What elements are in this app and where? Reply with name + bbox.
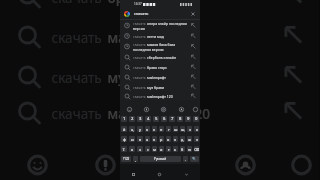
button[interactable]: ч: [137, 146, 143, 152]
button[interactable]: 🔍: [190, 156, 199, 162]
button[interactable]: More: [275, 139, 320, 180]
button[interactable]: Settings: [157, 103, 170, 116]
button[interactable]: ю: [187, 146, 192, 152]
other: Insert suggestion: [187, 31, 200, 41]
button[interactable]: Voice input: [79, 139, 131, 180]
staticText: 2: [131, 116, 134, 122]
button[interactable]: Stickers: [175, 103, 188, 116]
other: Insert suggestion: [267, 55, 319, 95]
button[interactable]: ф: [121, 136, 127, 142]
button[interactable]: 1: [121, 116, 127, 122]
button[interactable]: р: [159, 136, 164, 142]
button[interactable]: щ: [180, 126, 185, 132]
button[interactable]: м: [152, 146, 157, 152]
button[interactable]: 6: [161, 116, 167, 122]
button[interactable]: ы: [129, 136, 135, 142]
staticText: р: [160, 137, 163, 142]
staticText: й: [123, 127, 126, 132]
button[interactable]: и: [159, 146, 164, 152]
button[interactable]: н: [159, 126, 164, 132]
button[interactable]: б: [180, 146, 185, 152]
button[interactable]: Emoji: [123, 103, 136, 116]
button[interactable]: Home: [146, 164, 173, 180]
button[interactable]: скачать: [120, 62, 200, 72]
button[interactable]: скачать: [0, 55, 319, 95]
button[interactable]: скачать: [120, 41, 200, 52]
staticText: скачать: [133, 65, 147, 70]
button[interactable]: скачать: [120, 52, 200, 62]
button[interactable]: г: [166, 126, 171, 132]
button[interactable]: ⇧: [121, 146, 127, 152]
button[interactable]: скачать: [120, 92, 200, 100]
button[interactable]: я: [129, 146, 135, 152]
button[interactable]: 0: [193, 116, 199, 122]
button[interactable]: Clear: [191, 12, 195, 16]
button[interactable]: Voice input: [140, 103, 153, 116]
other: Insert suggestion: [187, 52, 200, 62]
button[interactable]: скачать: [0, 0, 319, 15]
staticText: муз брави: [147, 85, 165, 90]
button[interactable]: в: [137, 136, 143, 142]
button[interactable]: 9: [185, 116, 191, 122]
button[interactable]: ж: [187, 136, 192, 142]
button[interactable]: 2: [129, 116, 135, 122]
button[interactable]: Emoji: [11, 139, 63, 180]
staticText: т: [168, 147, 170, 152]
button[interactable]: х: [194, 126, 199, 132]
button[interactable]: ?123: [121, 156, 131, 162]
button[interactable]: Recents: [120, 164, 146, 180]
button[interactable]: скачать: [0, 95, 319, 127]
button[interactable]: .: [183, 156, 188, 162]
button[interactable]: у: [137, 126, 143, 132]
button[interactable]: скачать: [120, 82, 200, 92]
button[interactable]: й: [121, 126, 127, 132]
button[interactable]: ь: [173, 146, 178, 152]
button[interactable]: л: [173, 136, 178, 142]
button[interactable]: 5: [153, 116, 159, 122]
button[interactable]: е: [152, 126, 157, 132]
button[interactable]: скачать: [120, 31, 200, 41]
button[interactable]: скачать: [0, 15, 319, 55]
button[interactable]: д: [180, 136, 185, 142]
button[interactable]: скачать: [120, 20, 200, 31]
button[interactable]: ,: [133, 156, 138, 162]
button[interactable]: 3: [137, 116, 143, 122]
staticText: ?123: [123, 157, 130, 161]
button[interactable]: скачать: [120, 72, 200, 82]
staticText: скачать: [133, 94, 147, 99]
staticText: ,: [135, 157, 137, 162]
staticText: сбербанк онлайн: [147, 55, 177, 60]
button[interactable]: Back: [173, 164, 200, 180]
button[interactable]: п: [152, 136, 157, 142]
button[interactable]: More: [189, 103, 202, 116]
button[interactable]: ц: [129, 126, 135, 132]
staticText: скачать: [51, 67, 107, 87]
staticText: 3: [139, 116, 142, 122]
staticText: э: [196, 137, 198, 142]
button[interactable]: э: [194, 136, 199, 142]
button[interactable]: к: [145, 126, 150, 132]
button[interactable]: ⌫: [194, 146, 199, 152]
button[interactable]: 7: [169, 116, 175, 122]
button[interactable]: скачать: [124, 8, 195, 19]
staticText: б: [181, 147, 184, 152]
staticText: 6: [163, 116, 166, 122]
button[interactable]: т: [166, 146, 171, 152]
button[interactable]: 8: [177, 116, 183, 122]
button[interactable]: 4: [145, 116, 151, 122]
button[interactable]: Stickers: [219, 139, 271, 180]
staticText: последняя версия: [133, 47, 164, 52]
other: Insert suggestion: [187, 62, 200, 72]
button[interactable]: Русский: [140, 156, 181, 162]
button[interactable]: о: [166, 136, 171, 142]
staticText: н: [160, 127, 163, 132]
button[interactable]: ш: [173, 126, 178, 132]
staticText: к: [146, 127, 149, 132]
staticText: .: [185, 157, 187, 162]
button[interactable]: с: [145, 146, 150, 152]
staticText: 5: [155, 116, 158, 122]
other: Insert suggestion: [187, 72, 200, 82]
button[interactable]: Settings: [147, 139, 199, 180]
button[interactable]: з: [187, 126, 192, 132]
button[interactable]: а: [145, 136, 150, 142]
